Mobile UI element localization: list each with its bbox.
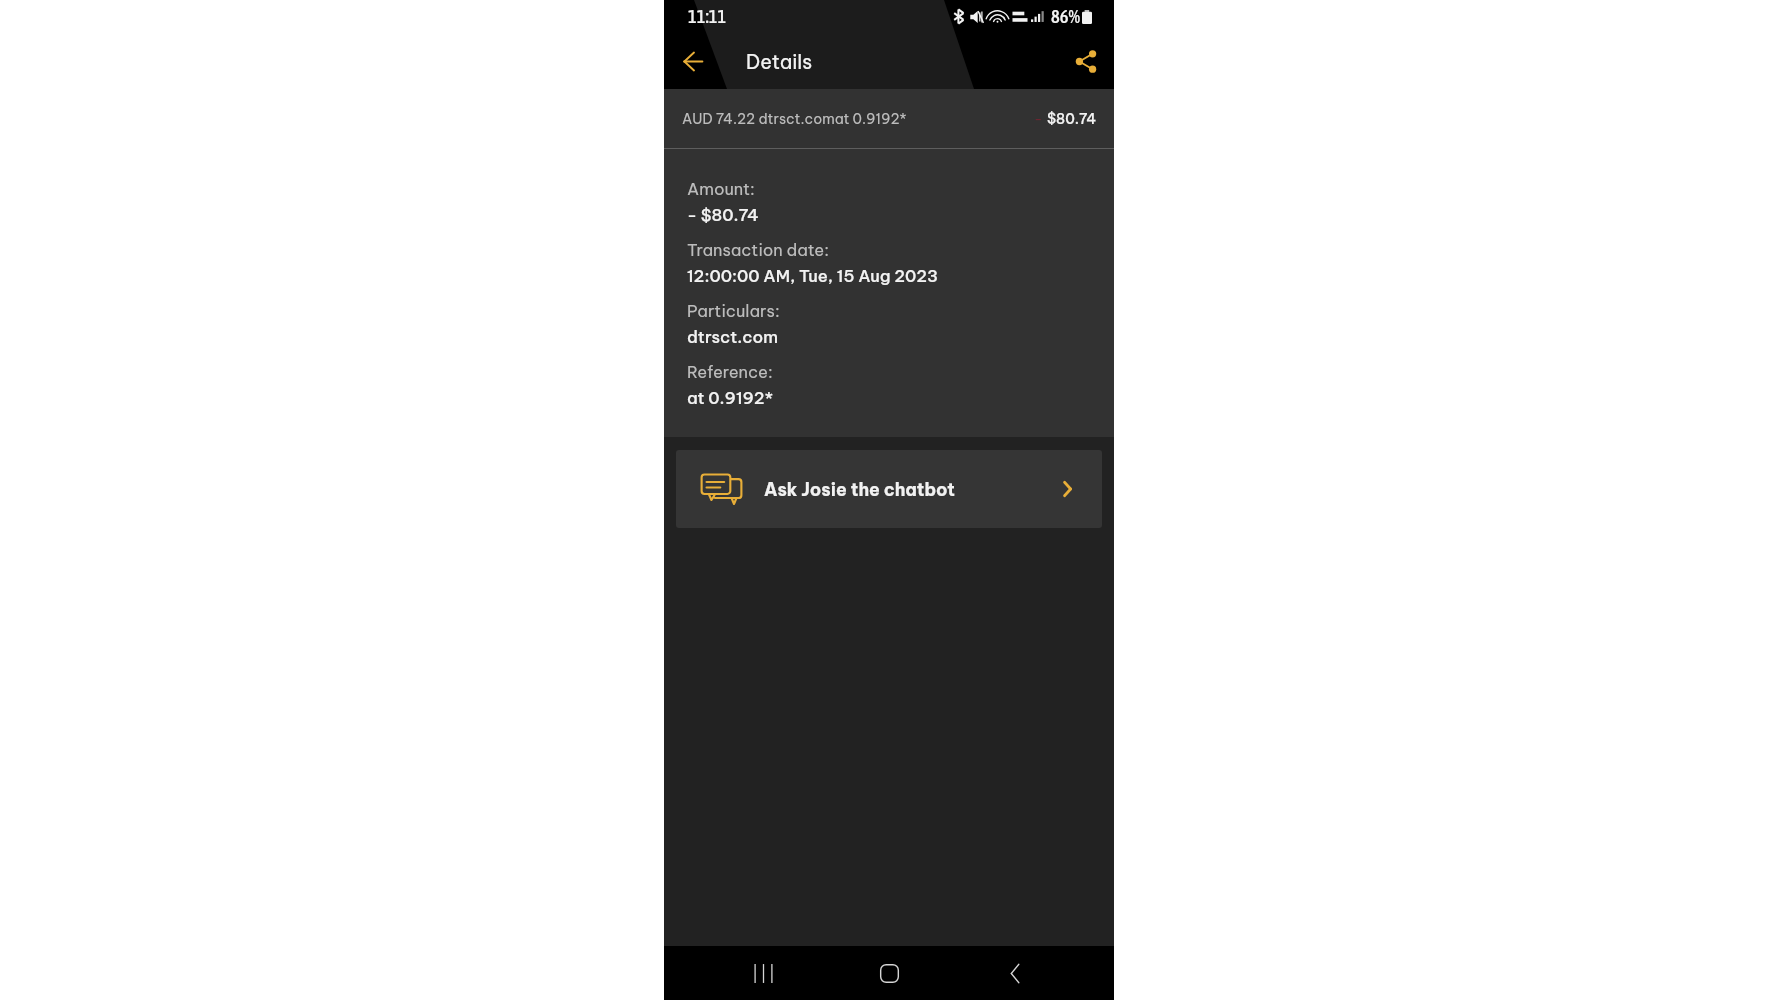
staticText: Particulars:: [687, 300, 780, 321]
staticText: -: [1034, 110, 1043, 128]
staticText: Amount:: [687, 178, 755, 199]
button[interactable]: Back: [952, 946, 1078, 1000]
button[interactable]: Ask Josie the chatbot: [676, 450, 1102, 528]
staticText: dtrsct.com: [687, 326, 778, 347]
staticText: Details: [746, 49, 813, 74]
staticText: 86%: [1051, 6, 1080, 27]
staticText: 12:00:00 AM, Tue, 15 Aug 2023: [687, 265, 939, 286]
staticText: Reference:: [687, 361, 773, 382]
button[interactable]: Home: [826, 946, 952, 1000]
button[interactable]: Recent apps: [700, 946, 826, 1000]
staticText: Transaction date:: [687, 239, 829, 260]
staticText: at 0.9192*: [687, 387, 773, 408]
staticText: 11:11: [688, 6, 727, 27]
button[interactable]: Share: [1058, 33, 1114, 89]
staticText: Ask Josie the chatbot: [764, 478, 956, 500]
staticText: AUD 74.22 dtrsct.comat 0.9192*: [682, 110, 907, 128]
button[interactable]: Navigate up: [664, 33, 722, 89]
staticText: $80.74: [1047, 110, 1097, 128]
staticText: - $80.74: [687, 204, 759, 225]
